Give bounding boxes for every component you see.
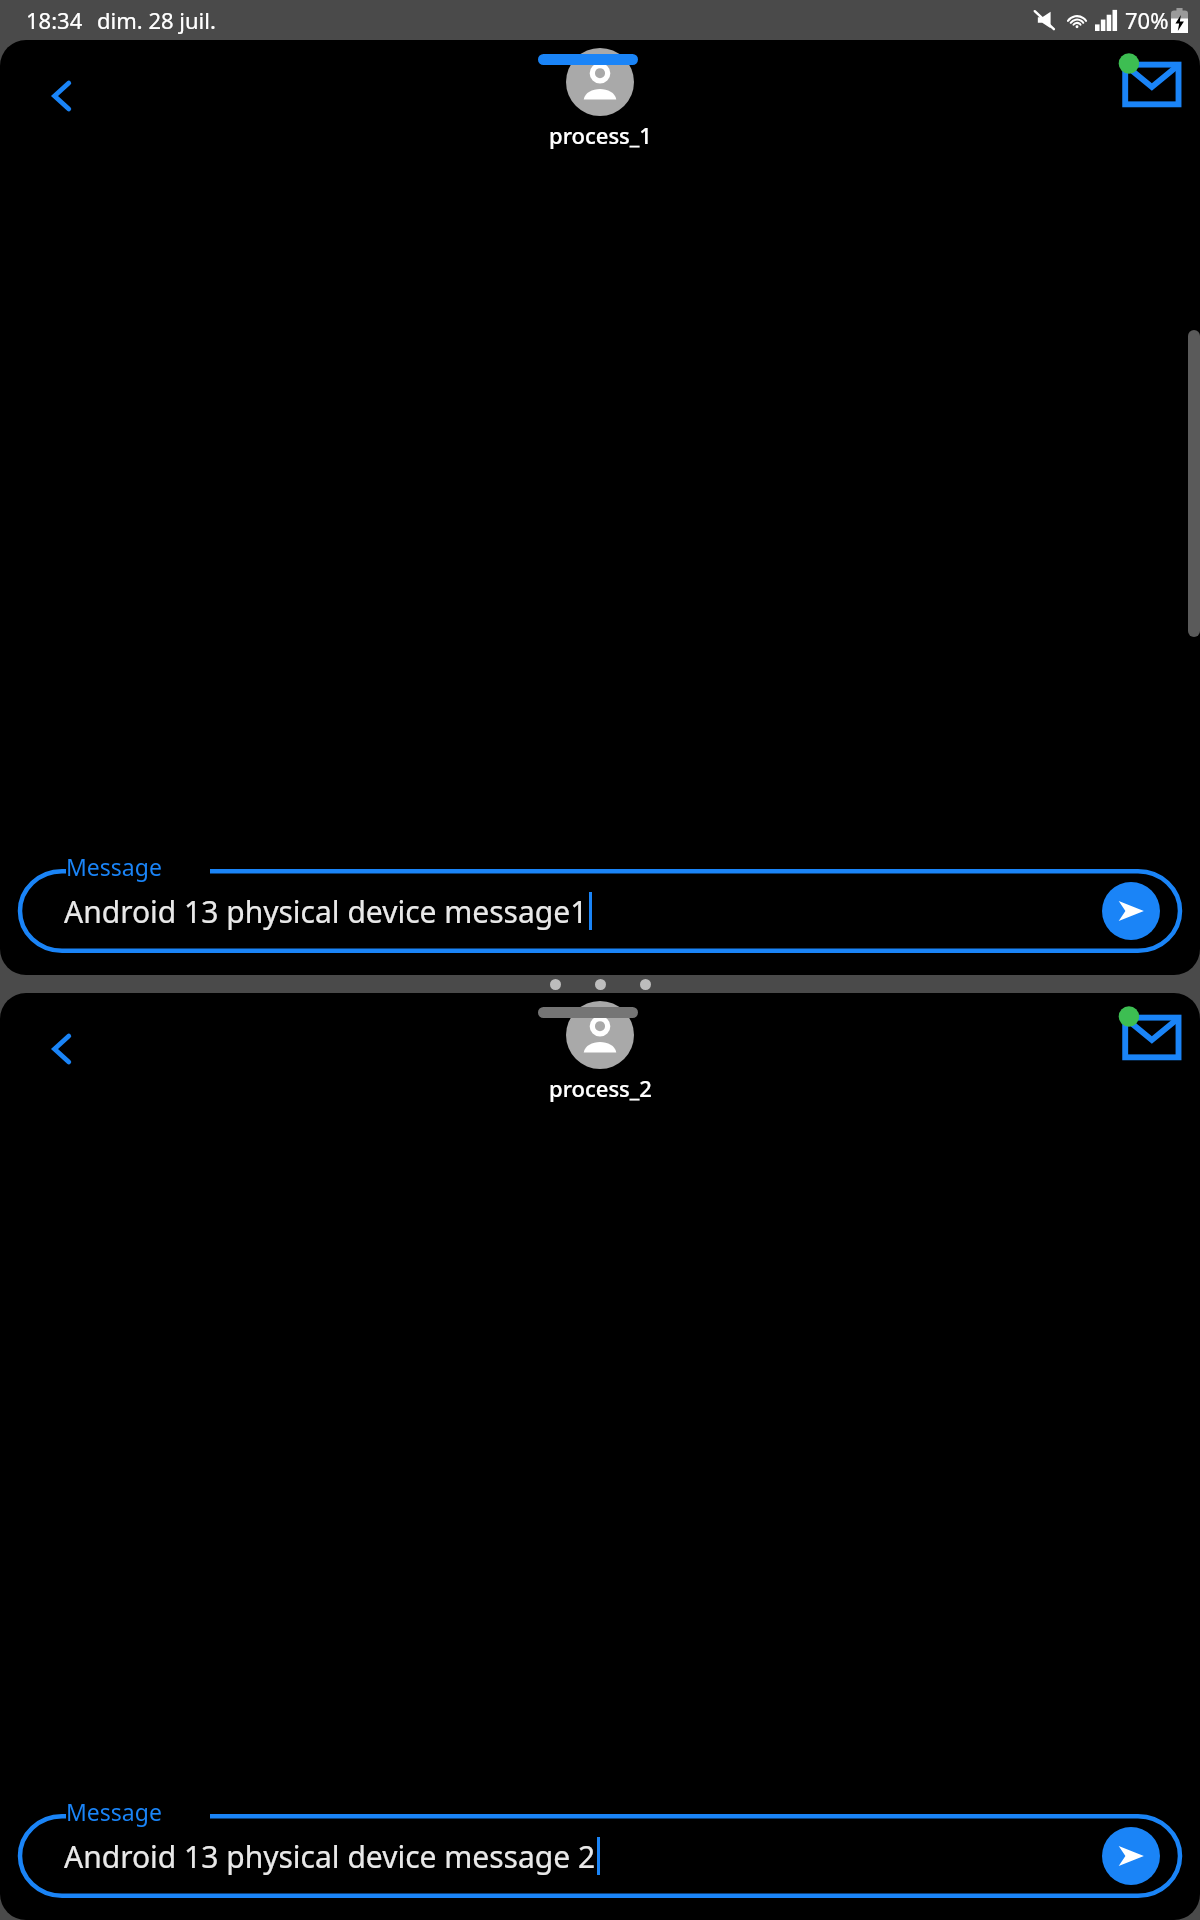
button[interactable]: Android 13 physical device message 2 — [18, 1814, 1182, 1898]
staticText: Message — [66, 1796, 162, 1827]
button[interactable]: Messages — [1108, 40, 1192, 124]
button[interactable]: Messages — [1108, 993, 1192, 1077]
staticText: dim. 28 juil. — [97, 5, 216, 35]
button[interactable]: Send — [1102, 1827, 1160, 1885]
staticText: 70% — [1125, 5, 1169, 35]
staticText: Message — [66, 851, 162, 882]
button[interactable]: Send — [1102, 882, 1160, 940]
button[interactable]: Back — [24, 1011, 100, 1087]
staticText: 18:34 — [26, 5, 83, 35]
button[interactable]: Resize split screen — [0, 975, 1200, 993]
button[interactable]: Profile process_1 — [566, 48, 634, 116]
staticText: Android 13 physical device message1 — [64, 891, 588, 932]
button[interactable]: Back — [24, 58, 100, 134]
staticText: process_2 — [549, 1073, 652, 1103]
staticText: process_1 — [549, 120, 652, 150]
button[interactable]: Android 13 physical device message1 — [18, 869, 1182, 953]
button[interactable]: Profile process_2 — [566, 1001, 634, 1069]
staticText: Android 13 physical device message 2 — [64, 1836, 596, 1877]
